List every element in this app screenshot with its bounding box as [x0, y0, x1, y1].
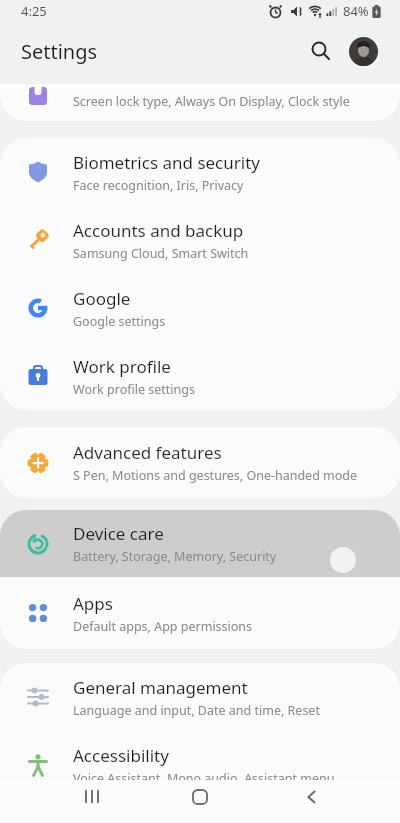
staticText: Accessibility	[73, 744, 169, 767]
staticText: Screen lock type, Always On Display, Clo…	[73, 93, 350, 110]
staticText: Face recognition, Iris, Privacy	[73, 177, 244, 194]
staticText: Work profile	[73, 355, 171, 378]
button[interactable]: Biometrics and security	[0, 138, 400, 206]
button[interactable]: Google	[0, 274, 400, 342]
button[interactable]	[349, 37, 378, 66]
button[interactable]: Accessibility	[0, 731, 400, 799]
button[interactable]: Device care	[0, 510, 400, 577]
button[interactable]: Advanced features	[0, 427, 400, 498]
staticText: S Pen, Motions and gestures, One-handed …	[73, 467, 358, 484]
staticText: Work profile settings	[73, 381, 195, 398]
staticText: 4:25	[21, 2, 47, 20]
button[interactable]: Screen lock type, Always On Display, Clo…	[0, 84, 400, 121]
staticText: Default apps, App permissions	[73, 618, 253, 635]
button[interactable]	[170, 780, 230, 823]
staticText: Samsung Cloud, Smart Switch	[73, 245, 249, 262]
staticText: Advanced features	[73, 441, 222, 464]
button[interactable]	[62, 780, 122, 823]
staticText: Biometrics and security	[73, 151, 260, 174]
staticText: General management	[73, 676, 248, 699]
button[interactable]: Apps	[0, 577, 400, 649]
button[interactable]: Work profile	[0, 342, 400, 410]
staticText: Google	[73, 287, 131, 310]
staticText: 84%	[343, 2, 369, 20]
staticText: Apps	[73, 592, 113, 615]
button[interactable]	[281, 780, 341, 823]
staticText: Settings	[21, 38, 98, 65]
staticText: Device care	[73, 522, 164, 545]
button[interactable]: Accounts and backup	[0, 206, 400, 274]
staticText: Google settings	[73, 313, 166, 330]
staticText: Language and input, Date and time, Reset	[73, 702, 320, 719]
staticText: Voice Assistant, Mono audio, Assistant m…	[73, 770, 335, 787]
button[interactable]: General management	[0, 663, 400, 731]
button[interactable]	[303, 33, 339, 69]
staticText: Battery, Storage, Memory, Security	[73, 548, 277, 565]
staticText: Accounts and backup	[73, 219, 244, 242]
